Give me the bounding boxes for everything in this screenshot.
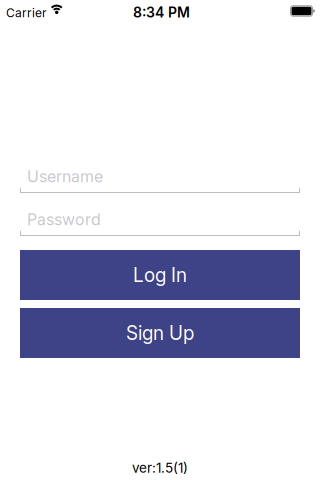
staticText: Password bbox=[27, 210, 101, 229]
button[interactable]: Username bbox=[20, 163, 300, 193]
staticText: ver:1.5(1) bbox=[132, 460, 188, 476]
button[interactable]: Log In bbox=[20, 250, 300, 300]
button[interactable]: Password bbox=[20, 206, 300, 236]
staticText: 8:34 PM bbox=[133, 4, 190, 21]
staticText: Sign Up bbox=[126, 322, 194, 344]
staticText: Username bbox=[27, 167, 103, 186]
staticText: Carrier bbox=[6, 6, 47, 20]
button[interactable]: Sign Up bbox=[20, 308, 300, 358]
staticText: Log In bbox=[133, 264, 187, 286]
